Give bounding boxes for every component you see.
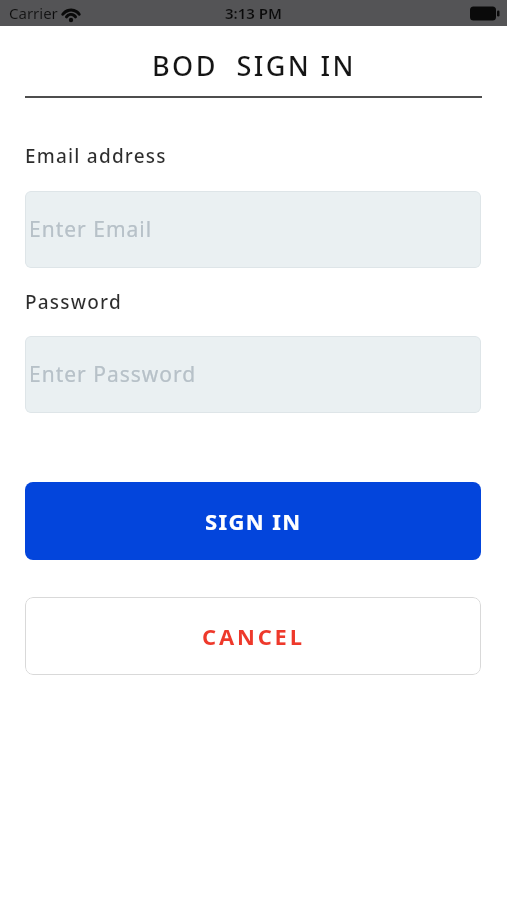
staticText: Enter Password <box>29 360 197 389</box>
staticText: CANCEL <box>202 621 305 651</box>
staticText: Carrier <box>9 3 58 23</box>
staticText: Email address <box>25 143 167 169</box>
button[interactable]: Enter Email <box>25 191 481 268</box>
staticText: BOD SIGN IN <box>152 47 356 84</box>
button[interactable]: SIGN IN <box>25 482 481 560</box>
staticText: Enter Email <box>29 215 153 244</box>
button[interactable]: CANCEL <box>25 597 481 675</box>
button[interactable]: Enter Password <box>25 336 481 413</box>
staticText: Password <box>25 289 122 315</box>
staticText: SIGN IN <box>205 506 302 536</box>
staticText: 3:13 PM <box>225 3 282 23</box>
